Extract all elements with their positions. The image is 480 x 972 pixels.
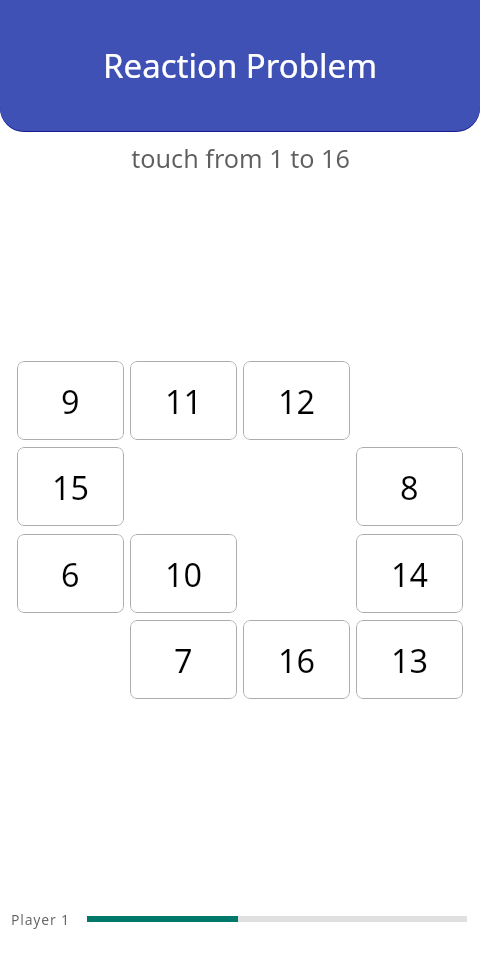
button[interactable]: 10 (130, 534, 237, 613)
button[interactable]: 6 (17, 534, 124, 613)
button[interactable]: 13 (356, 620, 463, 699)
button[interactable]: 16 (243, 620, 350, 699)
staticText: Player 1 (11, 910, 70, 929)
staticText: 8 (400, 465, 419, 509)
staticText: 9 (61, 379, 80, 423)
other: Player 1 progress (87, 916, 467, 922)
staticText: 10 (165, 552, 203, 596)
button[interactable]: 8 (356, 447, 463, 526)
staticText: Reaction Problem (103, 43, 378, 88)
button[interactable]: 12 (243, 361, 350, 440)
button[interactable]: 7 (130, 620, 237, 699)
other: Reaction Problem app bar (0, 0, 480, 131)
staticText: 11 (165, 379, 203, 423)
staticText: 16 (278, 638, 316, 682)
staticText: 7 (174, 638, 193, 682)
staticText: 6 (61, 552, 80, 596)
button[interactable]: 11 (130, 361, 237, 440)
button[interactable]: 9 (17, 361, 124, 440)
button[interactable]: 14 (356, 534, 463, 613)
staticText: 13 (391, 638, 429, 682)
staticText: 14 (391, 552, 429, 596)
staticText: touch from 1 to 16 (131, 141, 350, 175)
button[interactable]: 15 (17, 447, 124, 526)
staticText: 15 (52, 465, 90, 509)
staticText: 12 (278, 379, 316, 423)
